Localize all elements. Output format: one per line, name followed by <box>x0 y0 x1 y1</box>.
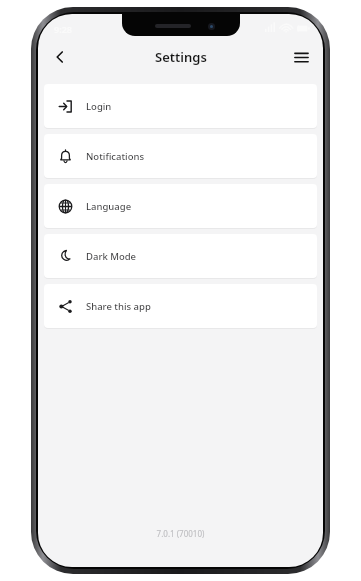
button[interactable]: Dark Mode <box>44 234 317 278</box>
button[interactable]: Notifications <box>44 134 317 178</box>
button[interactable]: Back <box>43 40 77 74</box>
staticText: Share this app <box>86 300 151 313</box>
staticText: Settings <box>155 48 207 66</box>
staticText: Login <box>86 100 112 113</box>
button[interactable]: Login <box>44 84 317 128</box>
button[interactable]: Share this app <box>44 284 317 328</box>
staticText: Notifications <box>86 150 145 163</box>
staticText: Language <box>86 200 132 213</box>
staticText: 7.0.1 (70010) <box>38 528 323 539</box>
button[interactable]: Menu <box>284 40 318 74</box>
staticText: Dark Mode <box>86 250 137 263</box>
button[interactable]: Language <box>44 184 317 228</box>
